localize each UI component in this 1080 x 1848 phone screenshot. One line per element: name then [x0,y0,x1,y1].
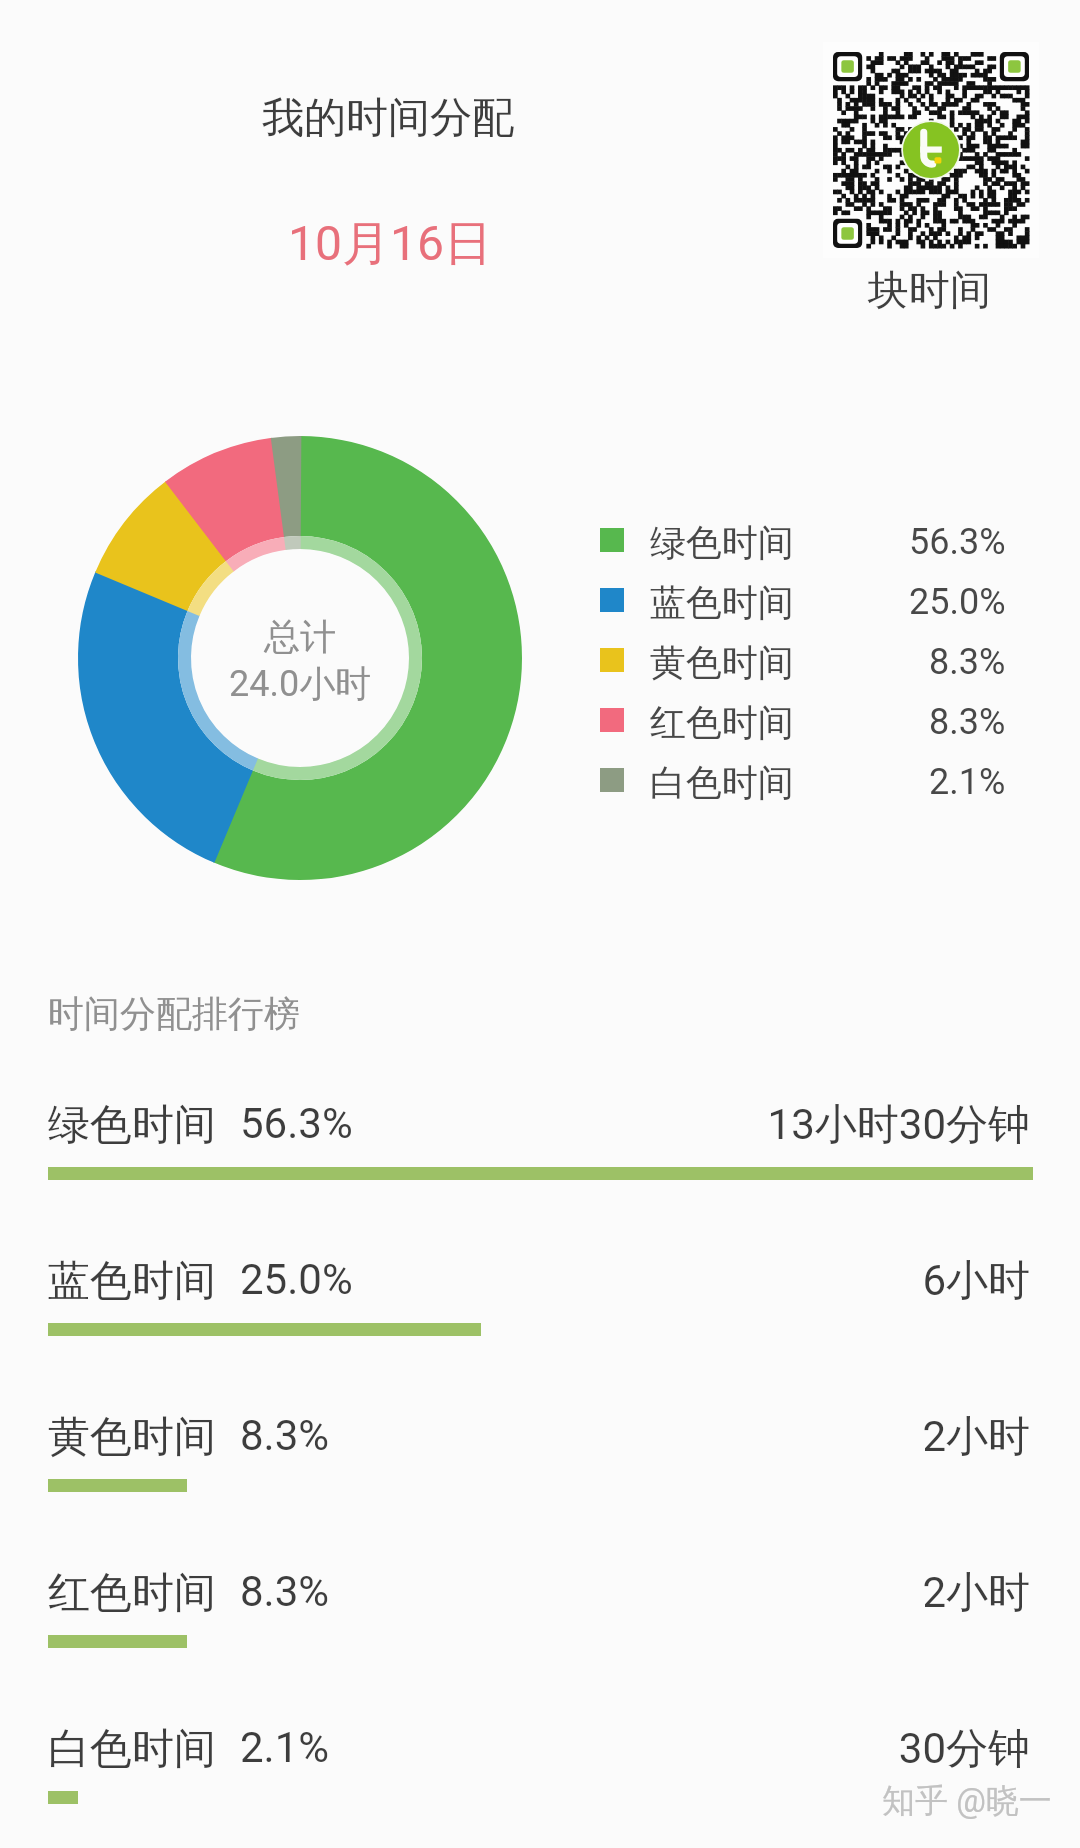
staticText: 绿色时间 [650,520,794,565]
button[interactable]: 绿色时间 [600,512,1006,572]
staticText: 绿色时间 [48,1099,216,1152]
staticText: 8.3% [240,1411,330,1460]
staticText: 10月16日 [288,214,492,274]
staticText: 2.1% [240,1723,330,1772]
staticText: 25.0% [240,1255,353,1304]
staticText: 30分钟 [0,1723,1030,1776]
staticText: 8.3% [240,1567,330,1616]
staticText: 2.1% [929,761,1006,803]
button[interactable]: 红色时间 [600,692,1006,752]
staticText: 13小时30分钟 [0,1099,1030,1152]
staticText: 25.0% [909,581,1006,623]
staticText: 蓝色时间 [48,1255,216,1308]
staticText: 蓝色时间 [650,580,794,625]
staticText: 红色时间 [650,700,794,745]
staticText: 2小时 [0,1411,1030,1464]
button[interactable]: 白色时间 [0,1723,1080,1835]
staticText: 时间分配排行榜 [48,991,300,1036]
staticText: 红色时间 [48,1567,216,1620]
button[interactable]: QR code [823,42,1039,258]
staticText: 8.3% [929,641,1006,683]
button[interactable]: 黄色时间 [0,1411,1080,1523]
staticText: 8.3% [929,701,1006,743]
staticText: 56.3% [909,521,1006,563]
staticText: 白色时间 [48,1723,216,1776]
staticText: 白色时间 [650,760,794,805]
staticText: 知乎 @晓一 [882,1780,1052,1822]
staticText: 2小时 [0,1567,1030,1620]
staticText: 我的时间分配 [262,92,514,145]
staticText: 黄色时间 [48,1411,216,1464]
button[interactable]: 绿色时间 [0,1099,1080,1211]
staticText: 块时间 [868,265,991,317]
staticText: 黄色时间 [650,640,794,685]
button[interactable]: 黄色时间 [600,632,1006,692]
button[interactable]: 红色时间 [0,1567,1080,1679]
staticText: 24.0小时 [229,661,372,706]
button[interactable]: 白色时间 [600,752,1006,812]
staticText: 总计 [264,614,336,659]
staticText: 56.3% [240,1099,353,1148]
button[interactable]: 蓝色时间 [600,572,1006,632]
staticText: 6小时 [0,1255,1030,1308]
button[interactable]: 蓝色时间 [0,1255,1080,1367]
